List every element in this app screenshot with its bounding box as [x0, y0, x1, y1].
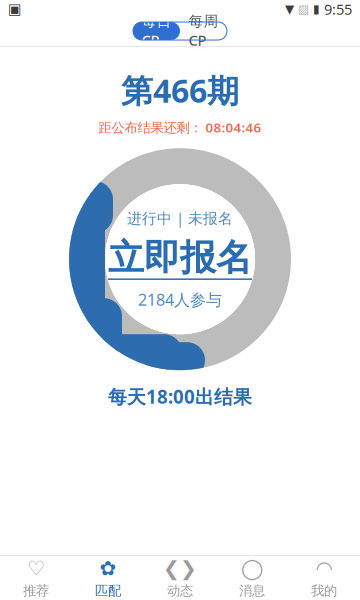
staticText: 每日CP	[141, 12, 171, 50]
button[interactable]: 每周CP	[180, 22, 227, 40]
staticText: 距公布结果还剩： 08:04:46	[98, 118, 261, 136]
staticText: 消息	[239, 583, 265, 599]
staticText: ▼	[285, 2, 294, 16]
button[interactable]: ◠	[288, 556, 360, 600]
staticText: ✿	[99, 557, 116, 580]
button[interactable]: ❮❯	[144, 556, 216, 600]
staticText: 9:55	[324, 0, 352, 19]
staticText: 每周CP	[188, 12, 218, 50]
staticText: 立即报名	[108, 236, 252, 280]
staticText: 匹配	[95, 583, 121, 599]
staticText: ◯	[241, 557, 263, 580]
staticText: ◠	[315, 557, 332, 580]
button[interactable]: 进行中 | 未报名	[105, 184, 255, 334]
staticText: 2184人参与	[138, 289, 222, 310]
staticText: ▮	[313, 2, 320, 16]
staticText: 每天18:00出结果	[108, 384, 252, 409]
staticText: 我的	[311, 583, 337, 599]
staticText: ♡	[27, 557, 45, 580]
staticText: ▨	[298, 2, 309, 16]
button[interactable]: ✿	[72, 556, 144, 600]
button[interactable]: ♡	[0, 556, 72, 600]
staticText: 第466期	[121, 69, 239, 111]
button[interactable]: ◯	[216, 556, 288, 600]
staticText: 推荐	[23, 583, 49, 599]
staticText: 进行中 | 未报名	[127, 208, 233, 228]
button[interactable]: 每日CP	[133, 22, 180, 40]
staticText: ❮❯	[163, 557, 197, 580]
staticText: ▣	[8, 1, 22, 17]
staticText: 动态	[167, 583, 193, 599]
